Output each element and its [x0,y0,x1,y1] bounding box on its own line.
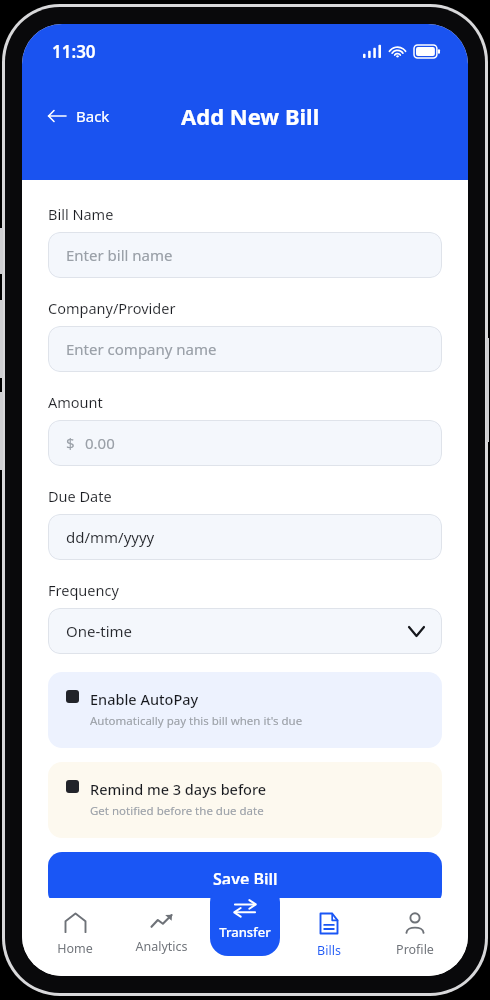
staticText: Transfer [219,923,271,941]
staticText: Get notified before the due date [90,803,264,819]
staticText: Due Date [48,486,112,506]
staticText: Enter company name [66,339,217,359]
button[interactable]: Analytics [127,906,195,961]
button[interactable]: Save Bill [48,852,442,906]
staticText: Add New Bill [181,101,320,131]
button[interactable]: Profile [381,906,449,964]
staticText: Analytics [135,938,188,955]
staticText: Bills [317,942,341,959]
button[interactable]: $ [48,420,442,466]
staticText: Remind me 3 days before [90,779,267,799]
button[interactable]: Transfer [210,884,280,956]
staticText: 11:30 [52,40,96,63]
button[interactable]: One-time [48,608,442,654]
button[interactable]: dd/mm/yyyy [48,514,442,560]
staticText: Profile [396,941,434,958]
staticText: Amount [48,392,103,412]
staticText: Company/Provider [48,298,176,318]
staticText: 0.00 [85,433,115,453]
button[interactable]: Enter bill name [48,232,442,278]
staticText: dd/mm/yyyy [66,527,155,547]
staticText: Back [76,106,110,126]
button[interactable]: Enable AutoPay [48,672,442,748]
button[interactable]: Bills [295,906,363,965]
button[interactable]: Home [41,906,109,963]
staticText: Enable AutoPay [90,689,199,709]
staticText: One-time [66,621,133,641]
staticText: Automatically pay this bill when it's du… [90,713,303,729]
staticText: $ [66,433,75,453]
button[interactable]: Enter company name [48,326,442,372]
staticText: Bill Name [48,204,114,224]
staticText: Frequency [48,580,119,600]
button[interactable]: Remind me 3 days before [48,762,442,838]
staticText: Enter bill name [66,245,173,265]
staticText: Home [57,940,93,957]
staticText: Save Bill [213,868,278,890]
button[interactable]: Back [40,100,118,132]
